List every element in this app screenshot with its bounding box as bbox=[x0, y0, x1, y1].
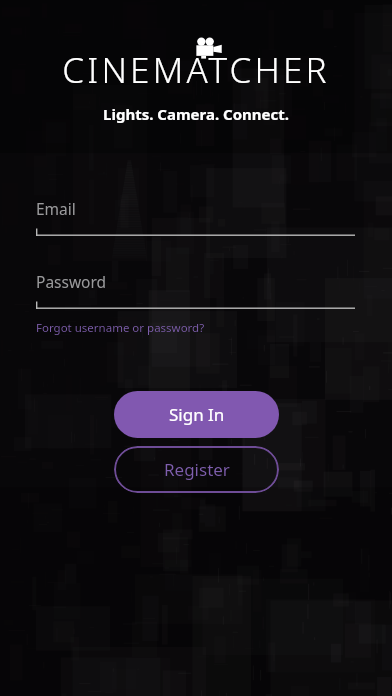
button[interactable]: Email bbox=[36, 198, 355, 236]
staticText: Password bbox=[36, 271, 107, 292]
staticText: Sign In bbox=[169, 403, 225, 426]
button[interactable]: Sign In bbox=[114, 391, 279, 438]
staticText: Email bbox=[36, 198, 76, 219]
button[interactable]: Register bbox=[114, 446, 279, 493]
button[interactable]: Forgot username or password? bbox=[36, 320, 205, 336]
button[interactable]: Password bbox=[36, 271, 355, 309]
staticText: CINEMATCHER bbox=[62, 46, 330, 94]
staticText: Register bbox=[164, 458, 230, 481]
staticText: Lights. Camera. Connect. bbox=[103, 104, 289, 124]
